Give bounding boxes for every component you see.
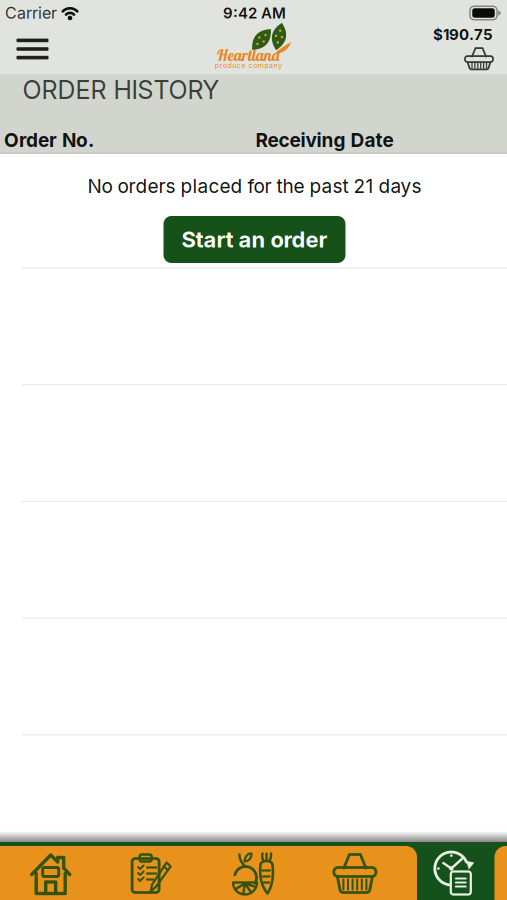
button[interactable]: Menu	[6, 28, 58, 69]
button[interactable]: Produce	[226, 846, 280, 900]
staticText: Heartland	[217, 45, 280, 65]
staticText: No orders placed for the past 21 days	[87, 174, 421, 197]
staticText: Receiving Date	[255, 128, 393, 151]
button[interactable]: Start an order	[163, 216, 345, 263]
button[interactable]: Cart	[433, 25, 493, 70]
staticText: produce company	[215, 61, 282, 70]
staticText: ORDER HISTORY	[22, 75, 219, 105]
staticText: 9:42 AM	[223, 4, 286, 22]
staticText: Carrier	[5, 3, 57, 23]
staticText: Order No.	[4, 128, 94, 151]
button[interactable]: Home	[25, 846, 77, 900]
button[interactable]: Basket	[329, 847, 381, 900]
button[interactable]: Order Guide	[126, 846, 178, 900]
staticText: Start an order	[181, 226, 327, 253]
button[interactable]: Order History	[430, 845, 482, 899]
staticText: $190.75	[433, 25, 493, 43]
